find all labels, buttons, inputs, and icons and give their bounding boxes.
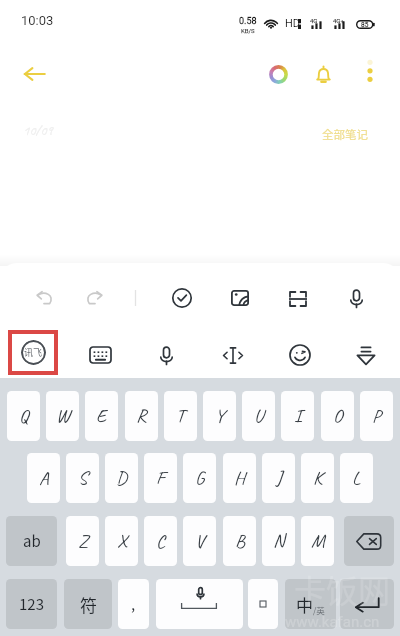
- button[interactable]: Switch input method: [12, 334, 54, 371]
- button[interactable]: G: [183, 453, 216, 503]
- button[interactable]: Scan: [277, 278, 319, 320]
- button[interactable]: N: [262, 516, 295, 566]
- staticText: I: [294, 404, 302, 428]
- staticText: 10/09: [23, 122, 53, 140]
- button[interactable]: P: [360, 391, 393, 441]
- button[interactable]: Z: [66, 516, 99, 566]
- staticText: W: [56, 404, 70, 428]
- button[interactable]: Redo: [72, 277, 114, 319]
- staticText: C: [156, 529, 165, 553]
- button[interactable]: M: [301, 516, 334, 566]
- button[interactable]: K: [301, 453, 334, 503]
- staticText: R: [136, 404, 147, 428]
- button[interactable]: ab: [6, 516, 57, 566]
- staticText: 0.58: [239, 16, 257, 27]
- staticText: M: [311, 529, 325, 553]
- staticText: 符: [80, 592, 97, 617]
- button[interactable]: Y: [203, 391, 236, 441]
- button[interactable]: U: [242, 391, 275, 441]
- button[interactable]: L: [340, 453, 373, 503]
- button[interactable]: D: [105, 453, 138, 503]
- button[interactable]: Checklist: [161, 277, 203, 319]
- button[interactable]: A: [27, 453, 60, 503]
- button[interactable]: Backspace: [344, 516, 394, 566]
- staticText: J: [276, 466, 282, 490]
- button[interactable]: Hide keyboard: [345, 334, 387, 376]
- button[interactable]: B: [223, 516, 256, 566]
- staticText: B: [235, 529, 245, 553]
- staticText: F: [156, 466, 165, 490]
- button[interactable]: Voice: [145, 334, 187, 376]
- button[interactable]: Enter: [340, 579, 394, 629]
- button[interactable]: T: [164, 391, 197, 441]
- button[interactable]: C: [144, 516, 177, 566]
- staticText: A: [39, 466, 49, 490]
- staticText: G: [195, 466, 205, 490]
- staticText: Z: [78, 529, 88, 553]
- button[interactable]: 123: [6, 579, 57, 629]
- staticText: O: [333, 404, 343, 428]
- button[interactable]: V: [183, 516, 216, 566]
- staticText: Q: [19, 404, 29, 428]
- button[interactable]: Emoji: [279, 334, 321, 376]
- staticText: E: [96, 404, 107, 428]
- staticText: 卡饭网: [294, 566, 391, 612]
- staticText: /英: [313, 604, 325, 616]
- staticText: ab: [23, 530, 41, 552]
- staticText: X: [117, 529, 127, 553]
- staticText: S: [78, 466, 88, 490]
- staticText: 123: [19, 593, 44, 615]
- staticText: N: [273, 529, 285, 553]
- button[interactable]: More options: [352, 53, 388, 89]
- button[interactable]: ,: [118, 579, 149, 629]
- button[interactable]: Reminder: [302, 53, 344, 95]
- button[interactable]: R: [125, 391, 158, 441]
- button[interactable]: W: [46, 391, 79, 441]
- staticText: T: [176, 404, 185, 428]
- staticText: 10:03: [21, 13, 54, 28]
- button[interactable]: X: [105, 516, 138, 566]
- button[interactable]: J: [262, 453, 295, 503]
- button[interactable]: Insert picture: [219, 277, 261, 319]
- staticText: D: [116, 466, 127, 490]
- button[interactable]: Theme colour: [257, 53, 299, 95]
- button[interactable]: F: [144, 453, 177, 503]
- staticText: www.kafan.cn: [285, 613, 380, 631]
- staticText: V: [195, 529, 205, 553]
- staticText: 中: [296, 592, 313, 617]
- button[interactable]: I: [281, 391, 314, 441]
- staticText: 讯飞: [24, 346, 43, 359]
- button[interactable]: Move cursor: [212, 334, 254, 376]
- staticText: P: [372, 404, 381, 428]
- staticText: Y: [215, 404, 225, 428]
- button[interactable]: Chinese English toggle: [285, 579, 336, 629]
- button[interactable]: Q: [7, 391, 40, 441]
- staticText: 4G: [310, 17, 318, 24]
- button[interactable]: E: [85, 391, 118, 441]
- button[interactable]: Keyboard layout: [79, 334, 121, 376]
- button[interactable]: Back: [13, 52, 56, 95]
- button[interactable]: Undo: [24, 277, 66, 319]
- button[interactable]: Space: [156, 579, 243, 629]
- staticText: H: [234, 466, 245, 490]
- button[interactable]: Voice input: [335, 277, 377, 319]
- button[interactable]: S: [66, 453, 99, 503]
- staticText: U: [254, 404, 264, 428]
- button[interactable]: 符: [64, 579, 112, 629]
- staticText: ,: [131, 593, 136, 615]
- button[interactable]: Period: [248, 579, 278, 629]
- staticText: 4G+: [333, 17, 344, 24]
- button[interactable]: O: [321, 391, 354, 441]
- staticText: 全部笔记: [322, 126, 368, 143]
- staticText: K: [313, 466, 323, 490]
- staticText: 85: [361, 21, 369, 29]
- staticText: L: [352, 466, 361, 490]
- staticText: HD: [285, 17, 301, 30]
- button[interactable]: H: [223, 453, 256, 503]
- staticText: KB/S: [241, 27, 255, 34]
